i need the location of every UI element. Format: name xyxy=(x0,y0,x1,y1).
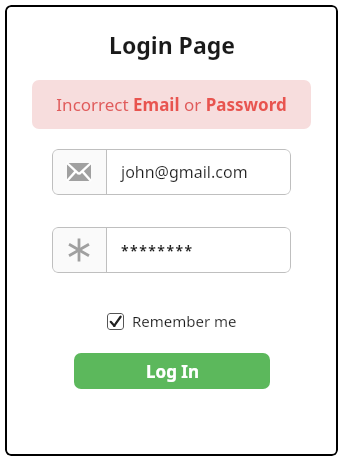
other: Email xyxy=(52,149,106,195)
staticText: Incorrect Email or Password xyxy=(56,93,287,116)
button[interactable]: Remember me xyxy=(103,307,241,335)
staticText: john@gmail.com xyxy=(121,161,248,183)
button[interactable]: Password xyxy=(52,227,291,273)
other: Password xyxy=(52,227,106,273)
staticText: ******** xyxy=(121,241,194,260)
staticText: Log In xyxy=(146,360,199,383)
staticText: Login Page xyxy=(109,29,235,60)
staticText: Remember me xyxy=(132,311,237,331)
button[interactable]: Email xyxy=(52,149,291,195)
button[interactable]: Log In xyxy=(74,353,270,389)
